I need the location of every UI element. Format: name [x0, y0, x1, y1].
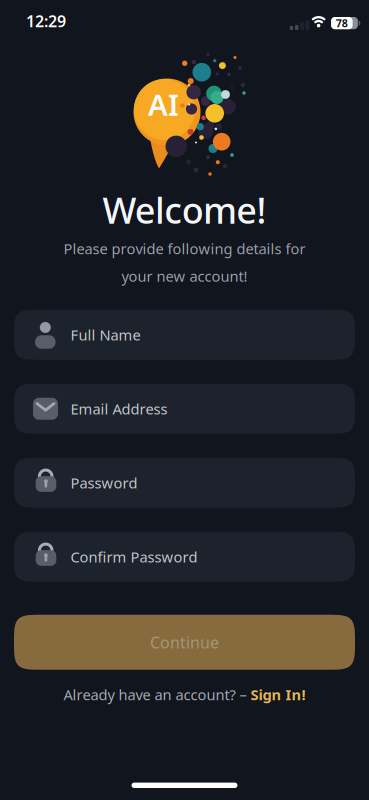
button[interactable]: Continue [14, 615, 355, 670]
staticText: your new account! [121, 266, 247, 286]
staticText: Please provide following details for [63, 239, 305, 258]
staticText: Sign In! [250, 685, 305, 704]
staticText: Email Address [70, 399, 167, 418]
staticText: Confirm Password [70, 547, 197, 566]
staticText: Already have an account? – [63, 685, 250, 704]
staticText: Password [70, 473, 137, 492]
button[interactable]: Password [14, 458, 355, 508]
button[interactable]: Full Name [14, 310, 355, 360]
staticText: Full Name [70, 325, 140, 344]
button[interactable]: Email Address [14, 384, 355, 434]
staticText: 78 [336, 16, 348, 30]
staticText: Welcome! [102, 186, 267, 234]
button[interactable]: Already have an account? – [63, 685, 305, 704]
staticText: Continue [150, 632, 219, 653]
button[interactable]: Confirm Password [14, 532, 355, 582]
staticText: AI [148, 85, 179, 124]
staticText: 12:29 [26, 10, 66, 32]
